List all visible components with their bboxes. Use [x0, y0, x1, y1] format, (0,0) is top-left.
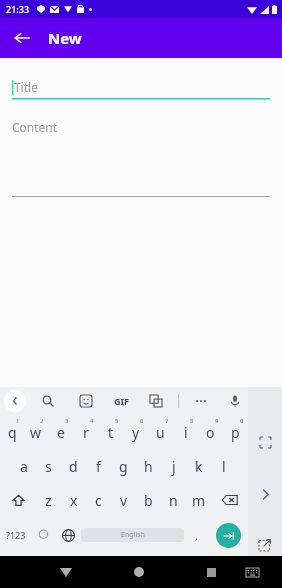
staticText: h — [144, 457, 153, 476]
button[interactable]: s — [36, 449, 61, 483]
button[interactable]: Enter — [216, 523, 241, 548]
staticText: y — [132, 423, 140, 442]
staticText: 4 — [90, 417, 94, 425]
button[interactable]: Home — [122, 556, 155, 588]
staticText: Content — [12, 119, 58, 135]
button[interactable]: Resize keyboard — [252, 429, 278, 455]
staticText: 3 — [65, 417, 69, 425]
button[interactable]: c — [86, 483, 111, 517]
staticText: x — [70, 491, 78, 510]
staticText: i — [184, 423, 188, 442]
staticText: GIF — [114, 395, 129, 407]
button[interactable]: n — [161, 483, 186, 517]
staticText: z — [45, 491, 52, 510]
button[interactable]: Content — [12, 118, 270, 196]
button[interactable]: Shift — [0, 483, 36, 517]
staticText: f — [96, 457, 101, 476]
staticText: s — [45, 457, 52, 476]
staticText: 1 — [16, 417, 20, 425]
button[interactable]: z — [36, 483, 61, 517]
staticText: n — [169, 491, 178, 510]
button[interactable]: j — [161, 449, 186, 483]
button[interactable]: Search — [38, 391, 58, 411]
button[interactable]: Stickers — [76, 391, 96, 411]
button[interactable]: x — [61, 483, 86, 517]
staticText: 8 — [190, 417, 194, 425]
staticText: English — [121, 530, 145, 540]
staticText: e — [57, 423, 65, 442]
button[interactable]: e — [48, 415, 73, 449]
staticText: k — [195, 457, 203, 476]
staticText: v — [120, 491, 128, 510]
staticText: 6 — [140, 417, 144, 425]
button[interactable]: i — [173, 415, 198, 449]
staticText: w — [30, 423, 42, 442]
button[interactable]: u — [148, 415, 173, 449]
button[interactable]: b — [136, 483, 161, 517]
staticText: . — [195, 528, 198, 543]
button[interactable]: g — [111, 449, 136, 483]
button[interactable]: v — [111, 483, 136, 517]
button[interactable]: d — [61, 449, 86, 483]
button[interactable]: Back — [49, 556, 82, 588]
button[interactable]: m — [186, 483, 211, 517]
button[interactable]: Backspace — [211, 483, 248, 517]
staticText: j — [172, 457, 176, 476]
button[interactable]: r — [73, 415, 98, 449]
staticText: 9 — [215, 417, 219, 425]
staticText: a — [20, 457, 28, 476]
button[interactable]: English — [81, 528, 184, 542]
button[interactable]: w — [24, 415, 48, 449]
button[interactable]: Emoji — [31, 517, 56, 553]
button[interactable]: t — [98, 415, 123, 449]
staticText: r — [83, 423, 89, 442]
button[interactable]: p — [223, 415, 248, 449]
button[interactable]: h — [136, 449, 161, 483]
button[interactable]: a — [11, 449, 36, 483]
staticText: m — [192, 491, 206, 510]
button[interactable]: GIF — [114, 391, 129, 411]
staticText: 7 — [165, 417, 169, 425]
staticText: 5 — [115, 417, 119, 425]
button[interactable]: Back — [6, 22, 38, 54]
button[interactable]: f — [86, 449, 111, 483]
staticText: l — [222, 457, 226, 476]
button[interactable]: Floating keyboard — [252, 533, 278, 556]
staticText: d — [69, 457, 78, 476]
staticText: Title — [14, 79, 38, 95]
button[interactable]: o — [198, 415, 223, 449]
button[interactable]: y — [123, 415, 148, 449]
button[interactable]: Recents — [195, 556, 228, 588]
button[interactable]: Switch keyboard — [236, 556, 269, 588]
button[interactable]: Change language — [56, 517, 81, 553]
staticText: ?123 — [6, 529, 26, 541]
button[interactable]: More options — [191, 391, 211, 411]
button[interactable]: Translate — [146, 391, 166, 411]
staticText: p — [231, 423, 240, 442]
button[interactable]: k — [186, 449, 211, 483]
button[interactable]: Title — [12, 76, 270, 98]
staticText: o — [206, 423, 215, 442]
staticText: 0 — [240, 417, 244, 425]
staticText: 2 — [40, 417, 44, 425]
button[interactable]: q — [0, 415, 24, 449]
button[interactable]: l — [211, 449, 236, 483]
staticText: u — [156, 423, 165, 442]
button[interactable]: Next — [252, 481, 278, 507]
button[interactable]: Voice input — [225, 391, 245, 411]
staticText: b — [144, 491, 153, 510]
staticText: c — [95, 491, 102, 510]
staticText: q — [8, 423, 17, 442]
button[interactable]: ?123 — [0, 517, 31, 553]
staticText: t — [108, 423, 114, 442]
staticText: g — [119, 457, 128, 476]
staticText: New — [48, 28, 82, 48]
button[interactable]: . — [184, 517, 209, 553]
button[interactable]: Collapse toolbar — [4, 390, 26, 412]
staticText: 21:33 — [6, 3, 30, 15]
